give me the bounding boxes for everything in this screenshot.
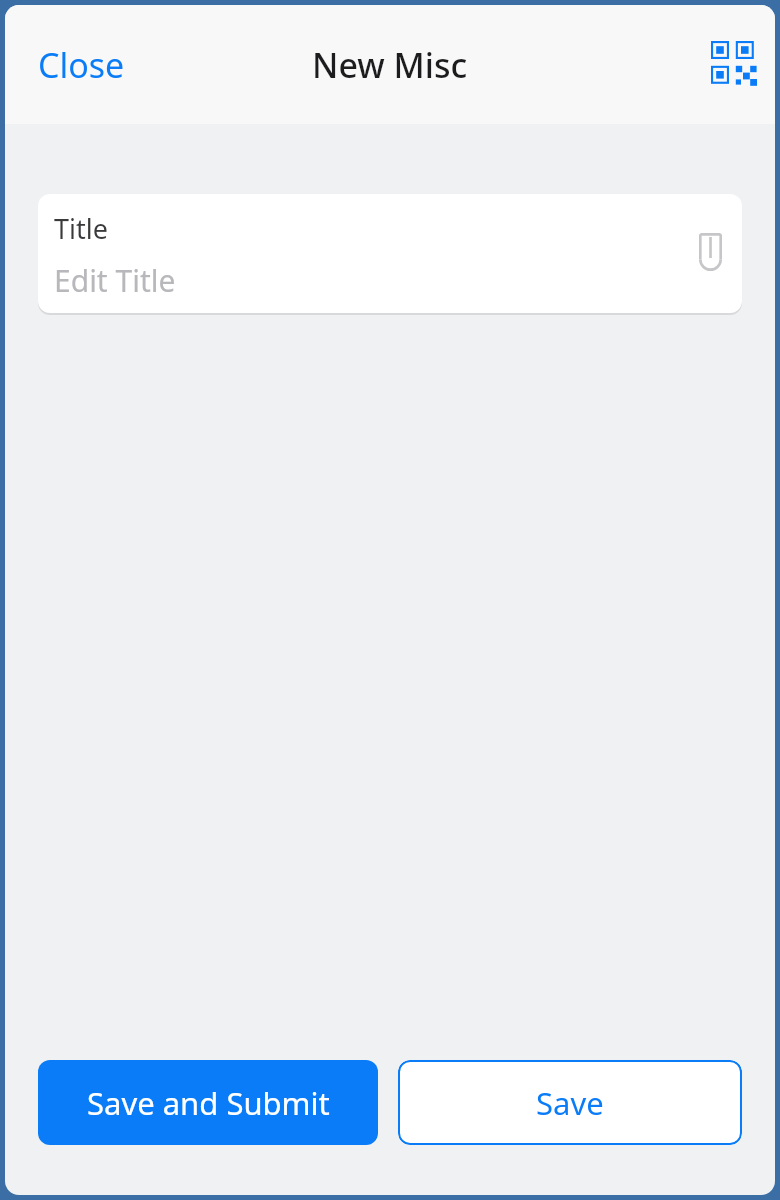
button[interactable]: Title — [38, 194, 742, 313]
staticText: New Misc — [312, 42, 468, 88]
button[interactable]: Attach file — [679, 217, 742, 287]
button[interactable]: Close — [5, 36, 137, 94]
button[interactable]: Scan QR code — [693, 27, 775, 101]
staticText: Save and Submit — [87, 1082, 330, 1124]
staticText: Save — [536, 1082, 604, 1124]
button[interactable]: Save and Submit — [38, 1060, 378, 1145]
staticText: Title — [54, 210, 108, 247]
button[interactable]: Save — [398, 1060, 742, 1145]
staticText: Edit Title — [54, 260, 176, 301]
